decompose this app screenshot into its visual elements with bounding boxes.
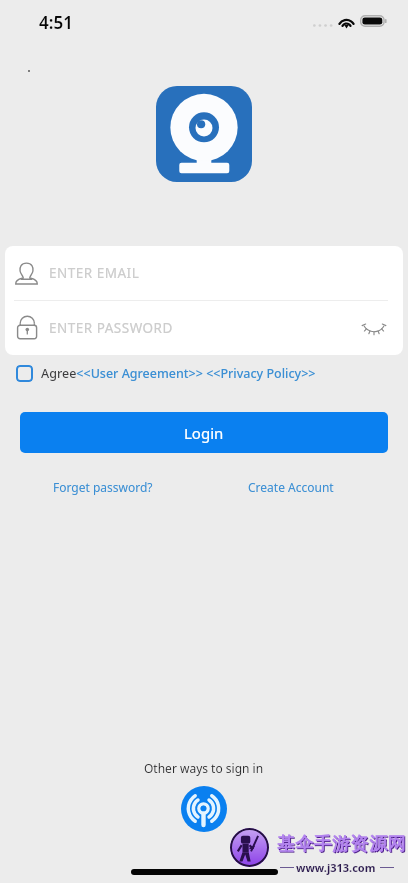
button[interactable]: ENTER PASSWORD — [5, 301, 403, 354]
staticText: 4:51 — [39, 11, 73, 34]
button[interactable]: App logo — [156, 86, 252, 182]
button[interactable]: ENTER EMAIL — [5, 246, 403, 300]
staticText: Agree<<User Agreement>> <<Privacy Policy… — [41, 365, 316, 382]
staticText: www.j313.com — [296, 860, 376, 875]
button[interactable]: Login — [20, 412, 388, 453]
button[interactable]: Create Account — [242, 474, 340, 500]
button[interactable]: Sign in with device — [181, 786, 227, 832]
staticText: ENTER PASSWORD — [49, 319, 173, 337]
staticText: Create Account — [248, 479, 334, 495]
staticText: 基伞手游资源网 — [277, 833, 406, 856]
button[interactable]: Forget password? — [47, 474, 159, 500]
button[interactable]: Agree<<User Agreement>> <<Privacy Policy… — [16, 364, 316, 383]
staticText: ENTER EMAIL — [49, 264, 140, 282]
staticText: Login — [184, 423, 224, 443]
staticText: Forget password? — [53, 479, 153, 495]
staticText: 基伞手游资源网 — [278, 834, 407, 857]
button[interactable]: Show password — [357, 311, 391, 345]
staticText: Other ways to sign in — [144, 760, 264, 776]
